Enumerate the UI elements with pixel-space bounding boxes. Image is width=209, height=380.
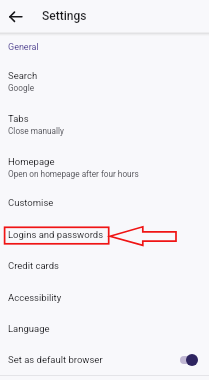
button[interactable]: Credit cards [0,257,209,288]
staticText: Credit cards [8,260,60,271]
button[interactable]: Accessibility [0,289,209,320]
staticText: Accessibility [8,292,62,303]
staticText: Google [8,83,35,93]
staticText: Search [8,70,38,81]
button[interactable]: Logins and passwords [0,226,209,257]
button[interactable]: Set as default browser toggle [178,350,204,370]
button[interactable]: Customise [0,194,209,225]
button[interactable]: Tabs [0,110,209,153]
staticText: Set as default browser [8,354,103,365]
button[interactable]: Search [0,67,209,110]
staticText: Homepage [8,156,55,167]
staticText: General [8,42,39,53]
staticText: Tabs [8,113,29,124]
staticText: Open on homepage after four hours [8,169,139,179]
button[interactable]: Homepage [0,153,209,196]
button[interactable]: Navigate up [4,5,28,29]
staticText: Language [8,323,50,334]
staticText: Customise [8,197,54,208]
button[interactable]: Set as default browser [0,351,209,380]
staticText: Settings [42,9,87,23]
staticText: Close manually [8,126,64,136]
staticText: Logins and passwords [8,229,104,240]
button[interactable]: Language [0,320,209,351]
